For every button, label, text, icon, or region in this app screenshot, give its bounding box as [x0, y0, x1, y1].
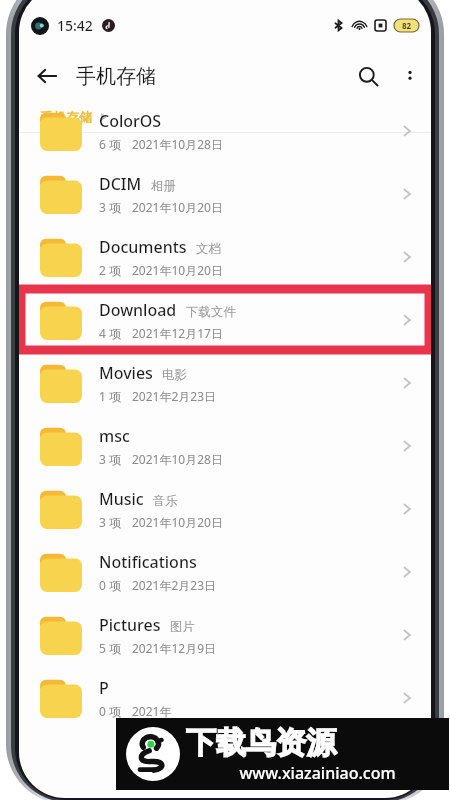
staticText: 音乐 [153, 493, 178, 509]
staticText: 0 项 [99, 703, 121, 719]
staticText: 电影 [162, 367, 187, 383]
button[interactable]: Movies [19, 351, 431, 414]
button[interactable]: Pictures [19, 603, 431, 666]
button[interactable]: DCIM [19, 162, 431, 225]
staticText: msc [99, 425, 130, 447]
staticText: Documents [99, 236, 187, 258]
button[interactable]: Notifications [19, 540, 431, 603]
button[interactable]: Search [347, 55, 389, 97]
staticText: 2021年10月20日 [132, 514, 223, 530]
staticText: 1 项 [99, 388, 121, 404]
button[interactable]: More options [389, 55, 431, 97]
staticText: 手机存储 [40, 109, 92, 125]
staticText: 2 项 [99, 262, 121, 278]
staticText: 2021年10月28日 [132, 451, 223, 467]
button[interactable]: P [19, 666, 431, 729]
button[interactable]: Download [19, 288, 431, 351]
staticText: 2021年10月20日 [132, 262, 223, 278]
button[interactable]: msc [19, 414, 431, 477]
button[interactable]: Music [19, 477, 431, 540]
staticText: Download [99, 299, 177, 321]
staticText: www.xiazainiao.com [186, 762, 449, 784]
staticText: ColorOS [99, 110, 162, 132]
button[interactable]: ColorOS [19, 99, 431, 162]
staticText: 图片 [170, 619, 195, 635]
staticText: 相册 [151, 178, 176, 194]
staticText: 2021年12月9日 [132, 640, 217, 656]
staticText: Notifications [99, 551, 197, 573]
staticText: 2021年10月28日 [132, 136, 223, 152]
staticText: 6 项 [99, 136, 121, 152]
staticText: 2021年2月23日 [132, 577, 217, 593]
staticText: P [99, 677, 109, 699]
staticText: Movies [99, 362, 153, 384]
staticText: 15:42 [57, 16, 93, 35]
staticText: 下载鸟资源 [186, 724, 336, 762]
staticText: 3 项 [99, 199, 121, 215]
staticText: 手机存储 [76, 64, 156, 89]
staticText: 2021年2月23日 [132, 388, 217, 404]
staticText: 3 项 [99, 514, 121, 530]
staticText: Music [99, 488, 144, 510]
staticText: 2021年12月17日 [132, 325, 223, 341]
staticText: 0 项 [99, 577, 121, 593]
button[interactable]: Back [27, 56, 67, 96]
staticText: 82 [402, 20, 412, 31]
button[interactable]: 手机存储 [40, 109, 108, 125]
staticText: 2021年 [132, 703, 172, 719]
staticText: 2021年10月20日 [132, 199, 223, 215]
staticText: 下载文件 [186, 304, 236, 320]
staticText: 5 项 [99, 640, 121, 656]
staticText: 文档 [196, 241, 221, 257]
staticText: Pictures [99, 614, 161, 636]
staticText: DCIM [99, 173, 142, 195]
staticText: 3 项 [99, 451, 121, 467]
staticText: 4 项 [99, 325, 121, 341]
button[interactable]: Documents [19, 225, 431, 288]
